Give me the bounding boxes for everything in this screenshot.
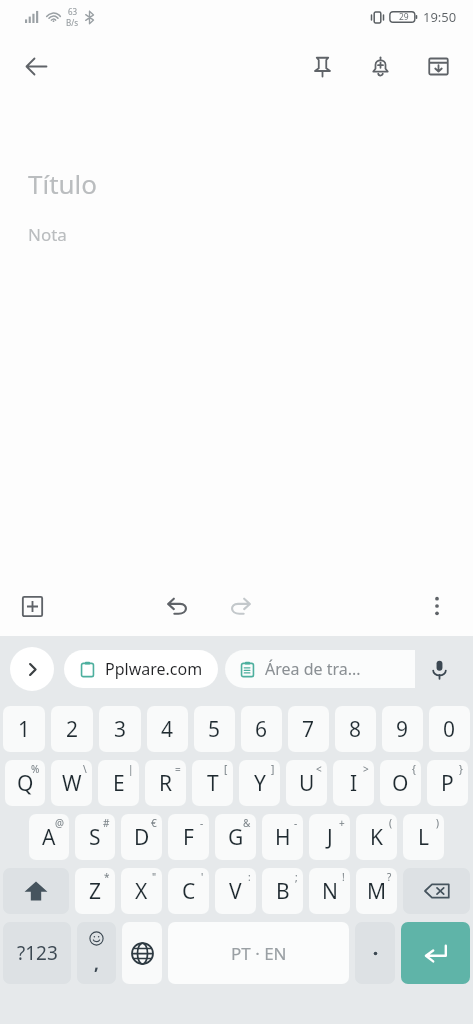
staticText: K [370, 823, 383, 852]
staticText: ' [201, 870, 204, 884]
button[interactable]: R [145, 760, 186, 806]
button[interactable]: Add [10, 584, 54, 628]
button[interactable]: V [215, 868, 256, 914]
button[interactable]: A [29, 814, 69, 860]
button[interactable]: O [380, 760, 421, 806]
button[interactable]: K [356, 814, 397, 860]
staticText: I [350, 769, 358, 798]
button[interactable]: Undo [154, 582, 202, 630]
staticText: O [392, 769, 409, 798]
staticText: B/s [66, 17, 79, 28]
button[interactable]: H [262, 814, 303, 860]
staticText: 1 [18, 715, 31, 744]
staticText: D [134, 823, 150, 852]
button[interactable]: Pin [301, 45, 343, 87]
button[interactable]: Redo [216, 582, 264, 630]
staticText: & [243, 816, 251, 830]
button[interactable]: G [215, 814, 256, 860]
staticText: Título [28, 166, 98, 201]
button[interactable]: E [98, 760, 139, 806]
staticText: } [459, 762, 463, 776]
button[interactable]: Expand toolbar [10, 647, 54, 691]
button[interactable]: More options [415, 584, 459, 628]
staticText: 8 [349, 715, 362, 744]
staticText: € [151, 816, 157, 830]
button[interactable]: T [192, 760, 233, 806]
button[interactable]: U [286, 760, 327, 806]
staticText: J [327, 823, 333, 852]
button[interactable]: Área de tra... [225, 650, 415, 688]
button[interactable]: Título [0, 98, 473, 576]
staticText: , [94, 952, 99, 975]
button[interactable]: Period [355, 922, 395, 984]
staticText: 19:50 [423, 8, 457, 26]
staticText: ! [342, 870, 345, 884]
staticText: 2 [66, 715, 79, 744]
staticText: C [182, 877, 196, 906]
button[interactable]: L [403, 814, 444, 860]
staticText: - [200, 816, 204, 830]
staticText: L [418, 823, 430, 852]
staticText: PT · EN [231, 942, 287, 965]
staticText: " [152, 870, 157, 884]
button[interactable]: Voice input [415, 645, 463, 693]
button[interactable]: Add reminder [359, 45, 401, 87]
button[interactable]: N [309, 868, 350, 914]
staticText: M [367, 877, 387, 906]
staticText: U [299, 769, 315, 798]
button[interactable]: W [51, 760, 92, 806]
staticText: { [412, 762, 416, 776]
button[interactable]: Enter [401, 922, 470, 984]
button[interactable]: Backspace [403, 868, 470, 914]
staticText: \ [83, 762, 87, 776]
button[interactable]: X [121, 868, 162, 914]
button[interactable]: 9 [382, 706, 423, 752]
button[interactable]: Y [239, 760, 280, 806]
staticText: > [363, 762, 369, 776]
staticText: 6 [255, 715, 268, 744]
button[interactable]: 3 [99, 706, 141, 752]
button[interactable]: 5 [194, 706, 235, 752]
button[interactable]: I [333, 760, 374, 806]
button[interactable]: J [309, 814, 350, 860]
button[interactable]: B [262, 868, 303, 914]
staticText: Q [17, 769, 34, 798]
button[interactable]: 0 [429, 706, 470, 752]
button[interactable]: Emoji [77, 922, 116, 984]
button[interactable]: S [75, 814, 115, 860]
button[interactable]: 6 [241, 706, 282, 752]
button[interactable]: Shift [3, 868, 69, 914]
button[interactable]: Pplware.com [64, 650, 218, 688]
button[interactable]: 2 [51, 706, 93, 752]
button[interactable]: D [121, 814, 162, 860]
staticText: ?123 [17, 940, 58, 966]
staticText: B [276, 877, 290, 906]
staticText: E [113, 769, 125, 798]
button[interactable]: M [356, 868, 397, 914]
staticText: T [207, 769, 219, 798]
button[interactable]: C [168, 868, 209, 914]
staticText: 4 [161, 715, 174, 744]
button[interactable]: Back [12, 42, 60, 90]
button[interactable]: Q [5, 760, 45, 806]
button[interactable]: 8 [335, 706, 376, 752]
button[interactable]: ?123 [3, 922, 71, 984]
staticText: 7 [302, 715, 315, 744]
staticText: * [104, 870, 110, 884]
staticText: 3 [114, 715, 127, 744]
staticText: A [42, 823, 56, 852]
staticText: 9 [396, 715, 409, 744]
staticText: 0 [443, 715, 456, 744]
button[interactable]: P [427, 760, 468, 806]
button[interactable]: Archive [417, 45, 459, 87]
staticText: Z [89, 877, 102, 906]
button[interactable]: 4 [147, 706, 188, 752]
button[interactable]: Space [168, 922, 349, 984]
button[interactable]: F [168, 814, 209, 860]
button[interactable]: Change language [122, 922, 162, 984]
staticText: ( [389, 816, 392, 830]
staticText: V [229, 877, 242, 906]
button[interactable]: Z [75, 868, 115, 914]
button[interactable]: 7 [288, 706, 329, 752]
button[interactable]: 1 [3, 706, 45, 752]
